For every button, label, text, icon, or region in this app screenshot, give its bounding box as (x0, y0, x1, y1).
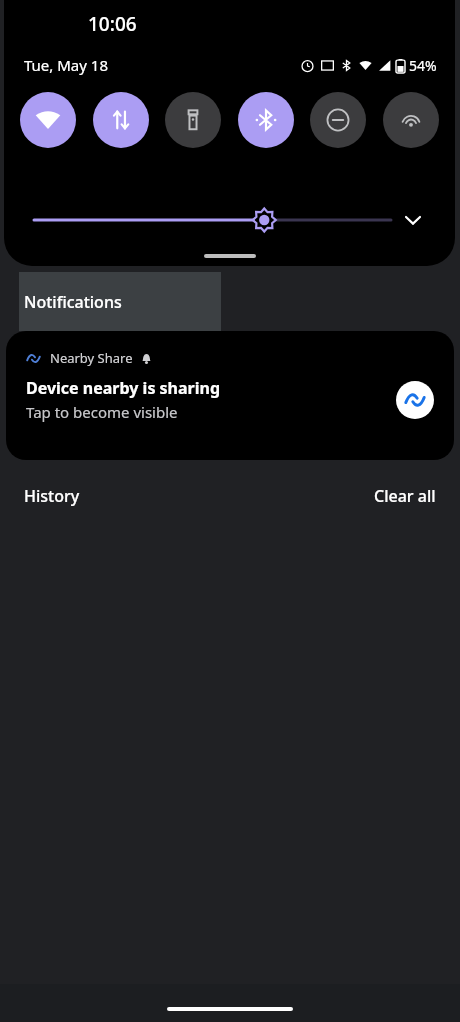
staticText: Tue, May 18 (24, 55, 108, 75)
staticText: History (24, 485, 80, 507)
button[interactable]: Cast (383, 92, 439, 148)
staticText: Device nearby is sharing (26, 377, 221, 399)
staticText: Notifications (24, 291, 122, 313)
button[interactable] (34, 207, 391, 233)
button[interactable]: Do not disturb (310, 92, 366, 148)
staticText: Tap to become visible (26, 402, 178, 422)
staticText: 10:06 (88, 11, 137, 37)
button[interactable]: Expand quick settings (391, 198, 435, 242)
button[interactable]: Clear all (374, 485, 436, 507)
staticText: 54% (409, 56, 437, 75)
button[interactable]: Notifications (19, 272, 221, 331)
button[interactable]: Flashlight (165, 92, 221, 148)
button[interactable]: Bluetooth (238, 92, 294, 148)
button[interactable]: Internet (20, 92, 76, 148)
staticText: Clear all (374, 485, 436, 507)
button[interactable]: Mobile data (93, 92, 149, 148)
staticText: Nearby Share (50, 349, 133, 367)
button[interactable]: Nearby Share (6, 331, 454, 460)
button[interactable]: History (24, 485, 80, 507)
